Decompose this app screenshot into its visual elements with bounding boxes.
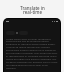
staticText: Translate in real-time: [20, 5, 45, 16]
staticText: Lorem ipsum dolor sit amet consectetur a…: [6, 37, 58, 70]
